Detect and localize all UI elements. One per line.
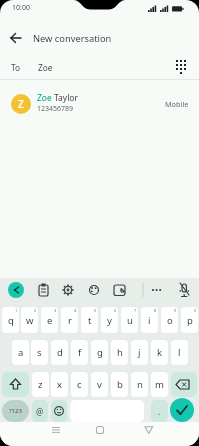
staticText: s <box>37 346 42 359</box>
staticText: r <box>68 314 72 327</box>
button[interactable]: l <box>171 340 188 365</box>
button[interactable]: u <box>121 307 138 333</box>
button[interactable] <box>38 282 54 298</box>
staticText: z <box>38 378 43 391</box>
button[interactable]: j <box>131 340 148 365</box>
staticText: q <box>8 314 14 327</box>
button[interactable]: k <box>151 340 168 365</box>
staticText: 0 <box>194 308 197 313</box>
button[interactable]: Z <box>0 84 199 124</box>
button[interactable] <box>89 282 105 298</box>
staticText: 8 <box>154 308 157 313</box>
staticText: 3 <box>54 308 57 313</box>
staticText: i <box>148 314 151 327</box>
button[interactable]: c <box>71 372 88 397</box>
button[interactable]: b <box>111 372 128 397</box>
button[interactable] <box>0 54 199 79</box>
staticText: d <box>57 346 63 359</box>
button[interactable]: p <box>181 307 198 333</box>
button[interactable] <box>148 282 164 298</box>
button[interactable]: r <box>61 307 78 333</box>
button[interactable] <box>171 372 197 397</box>
staticText: New conversation <box>33 32 112 45</box>
staticText: 5 <box>94 308 97 313</box>
staticText: 7 <box>134 308 137 313</box>
staticText: Zoe <box>38 62 53 73</box>
button[interactable] <box>51 400 67 422</box>
button[interactable]: g <box>91 340 108 365</box>
staticText: 2 <box>34 308 37 313</box>
button[interactable] <box>138 422 158 440</box>
staticText: j <box>138 346 141 359</box>
button[interactable] <box>46 422 66 440</box>
staticText: c <box>77 378 82 391</box>
button[interactable]: . <box>151 400 168 422</box>
button[interactable] <box>179 282 195 298</box>
button[interactable]: o <box>161 307 178 333</box>
button[interactable] <box>90 422 110 440</box>
staticText: a <box>18 346 24 359</box>
button[interactable]: i <box>141 307 158 333</box>
staticText: ?123 <box>9 407 22 415</box>
staticText: n <box>137 378 143 391</box>
button[interactable]: f <box>71 340 88 365</box>
button[interactable]: @ <box>32 400 48 422</box>
button[interactable]: q <box>2 307 19 333</box>
staticText: e <box>47 314 53 327</box>
button[interactable]: s <box>31 340 48 365</box>
staticText: f <box>78 346 82 359</box>
button[interactable] <box>170 398 194 422</box>
staticText: Mobile <box>165 99 189 109</box>
staticText: u <box>127 314 133 327</box>
staticText: v <box>97 378 102 391</box>
button[interactable]: w <box>21 307 38 333</box>
button[interactable]: x <box>51 372 68 397</box>
button[interactable]: z <box>32 372 49 397</box>
staticText: To <box>11 62 21 73</box>
staticText: m <box>155 378 164 391</box>
staticText: Zoe Taylor <box>37 92 79 104</box>
button[interactable]: y <box>101 307 118 333</box>
button[interactable]: h <box>111 340 128 365</box>
staticText: l <box>178 346 181 359</box>
staticText: t <box>88 314 92 327</box>
staticText: 10:00 <box>12 3 30 13</box>
staticText: 4 <box>74 308 77 313</box>
staticText: k <box>157 346 163 359</box>
staticText: 1 <box>15 308 18 313</box>
button[interactable]: a <box>12 340 29 365</box>
staticText: w <box>26 314 34 327</box>
button[interactable]: v <box>91 372 108 397</box>
button[interactable] <box>2 372 29 397</box>
button[interactable]: e <box>41 307 58 333</box>
staticText: b <box>117 378 123 391</box>
button[interactable] <box>114 282 130 298</box>
staticText: g <box>97 346 103 359</box>
staticText: h <box>117 346 123 359</box>
staticText: y <box>107 314 112 327</box>
staticText: 6 <box>114 308 117 313</box>
staticText: x <box>57 378 63 391</box>
button[interactable]: n <box>131 372 148 397</box>
button[interactable] <box>8 282 24 298</box>
staticText: . <box>158 406 161 417</box>
button[interactable] <box>63 282 79 298</box>
staticText: o <box>167 314 173 327</box>
button[interactable] <box>4 28 32 48</box>
staticText: Z <box>18 97 24 111</box>
staticText: 123456789 <box>37 104 74 114</box>
button[interactable]: ?123 <box>2 400 29 422</box>
staticText: @ <box>36 406 44 417</box>
staticText: 9 <box>174 308 177 313</box>
button[interactable]: t <box>81 307 98 333</box>
button[interactable]: m <box>151 372 168 397</box>
staticText: p <box>187 314 193 327</box>
button[interactable]: d <box>51 340 68 365</box>
